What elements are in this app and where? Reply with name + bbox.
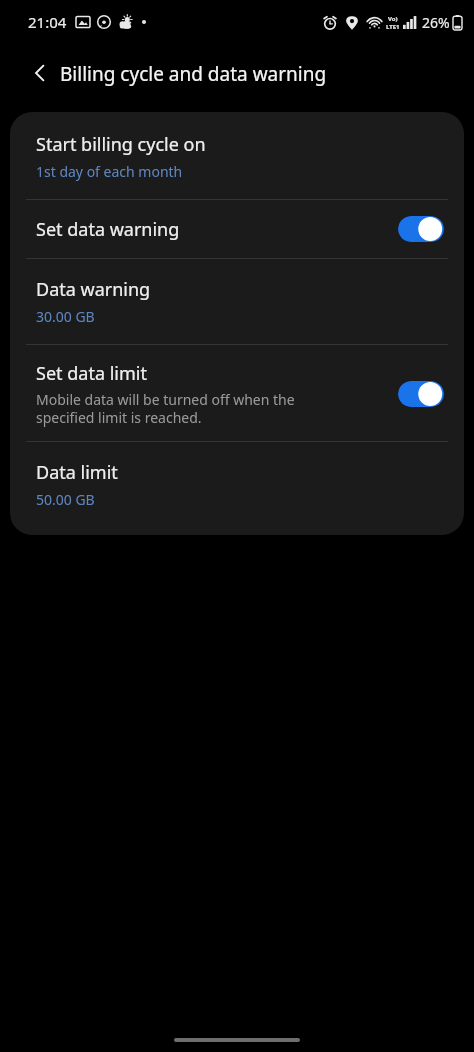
button[interactable]: Set data limit [10,345,464,441]
button[interactable]: Data warning [10,259,464,344]
staticText: 50.00 GB [36,490,95,509]
staticText: Set data limit [36,361,147,386]
staticText: Data limit [36,460,118,485]
button[interactable]: Back [18,51,62,95]
button[interactable]: Toggle on [398,216,444,242]
staticText: 30.00 GB [36,307,95,326]
staticText: Start billing cycle on [36,132,206,157]
staticText: Data warning [36,277,151,302]
staticText: Set data warning [36,217,180,242]
staticText: 1st day of each month [36,162,183,181]
staticText: LTE1 [386,23,400,31]
button[interactable]: Toggle on [398,381,444,407]
button[interactable]: Data limit [10,442,464,535]
staticText: 26% [422,13,450,32]
button[interactable]: Set data warning [10,200,464,258]
staticText: Mobile data will be turned off when the … [36,390,326,427]
button[interactable]: Start billing cycle on [10,112,464,199]
staticText: Vo) [388,15,398,23]
staticText: 21:04 [28,12,67,32]
staticText: Billing cycle and data warning [60,61,327,87]
